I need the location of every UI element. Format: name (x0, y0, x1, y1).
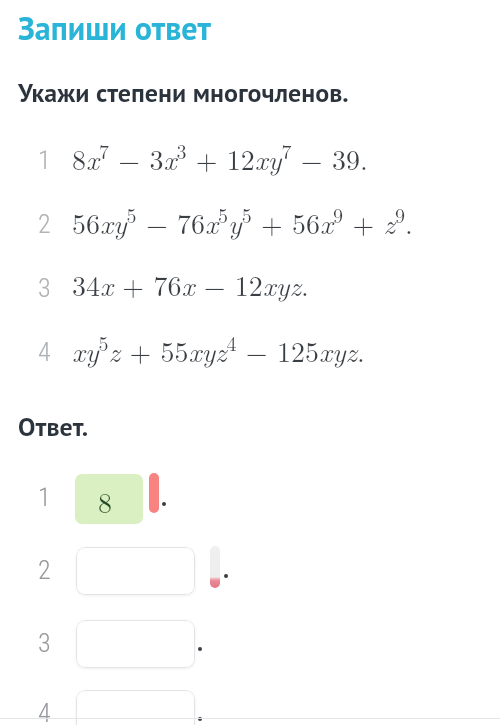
staticText: 3 (38, 273, 51, 303)
staticText: Запиши ответ (18, 7, 211, 48)
staticText: 2 (38, 209, 51, 239)
staticText: 4 (38, 698, 51, 725)
staticText: 1 (38, 482, 51, 512)
staticText: 4 (38, 337, 51, 367)
button[interactable]: Ответ 3 (76, 620, 195, 668)
button[interactable]: Ответ 1 (75, 474, 143, 524)
staticText: xy5z + 55xyz4 − 125xyz. (72, 328, 365, 371)
staticText: Укажи степени многочленов. (18, 76, 349, 110)
staticText: 1 (38, 145, 51, 175)
staticText: Ответ. (18, 410, 89, 444)
staticText: 34x + 76x − 12xyz. (72, 264, 309, 304)
button[interactable]: Ответ 2 (76, 547, 195, 595)
button[interactable]: Ответ 4 (76, 690, 195, 725)
staticText: 2 (38, 555, 51, 585)
staticText: 3 (38, 628, 51, 658)
staticText: 8x7 − 3x3 + 12xy7 − 39. (72, 136, 368, 179)
staticText: 8 (98, 481, 113, 521)
staticText: 56xy5 − 76x5y5 + 56x9 + z9. (72, 200, 413, 243)
